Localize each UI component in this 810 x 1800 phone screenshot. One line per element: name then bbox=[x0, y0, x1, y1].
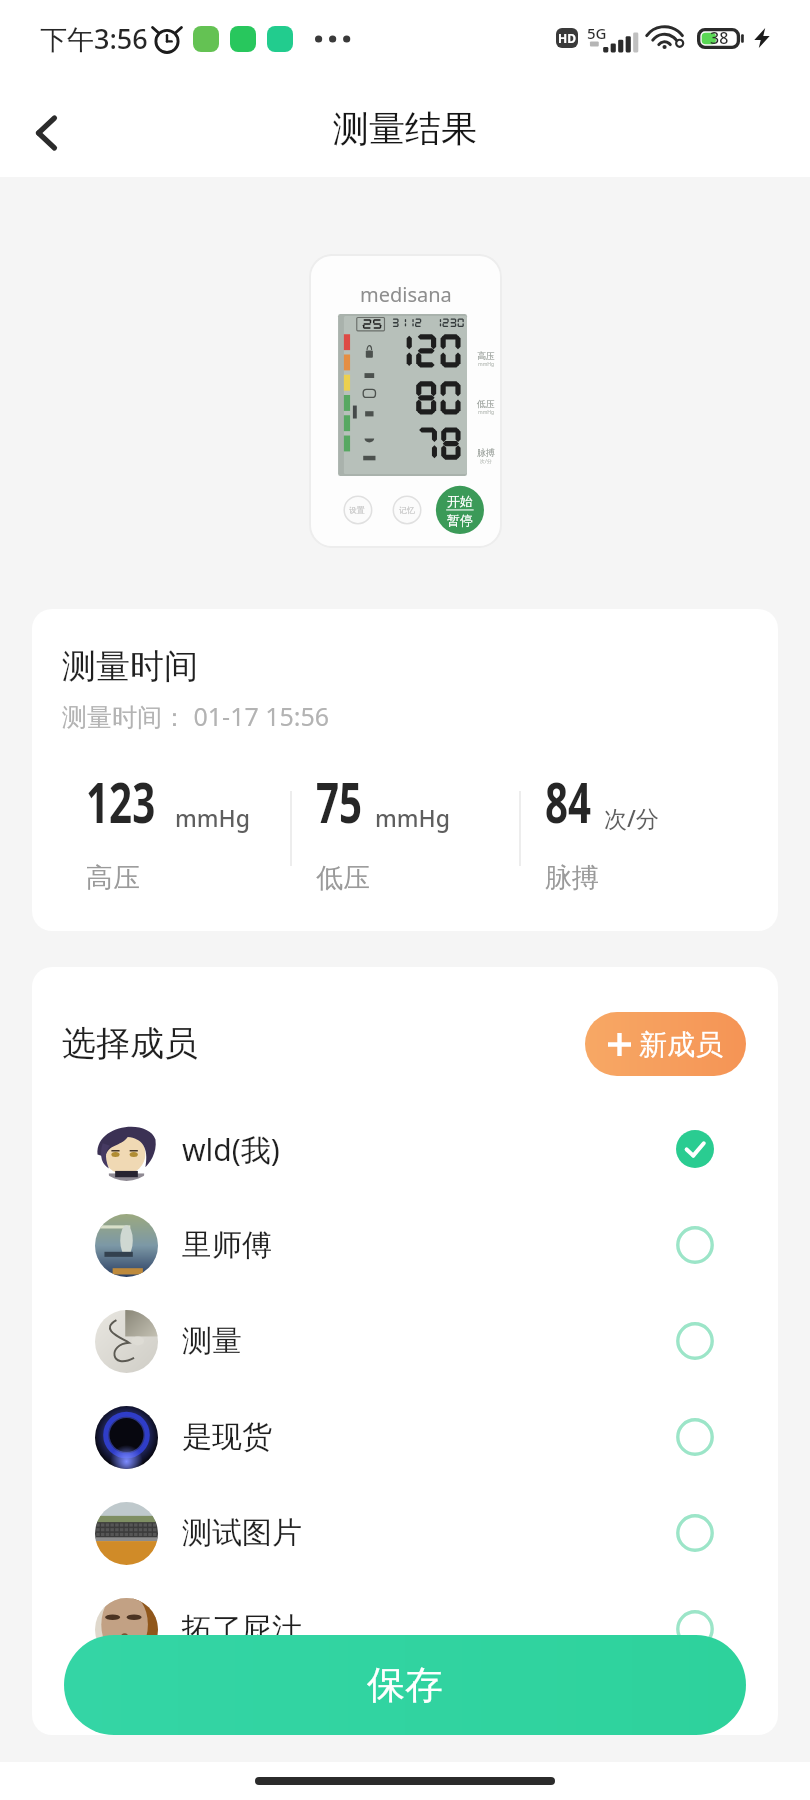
button[interactable]: 是现货 bbox=[32, 1389, 778, 1485]
staticText: 里师傅 bbox=[182, 1226, 272, 1264]
staticText: 次/分 bbox=[604, 802, 659, 833]
staticText: 低压 bbox=[477, 398, 495, 409]
staticText: HD bbox=[558, 30, 576, 46]
staticText: mmHg bbox=[478, 409, 495, 416]
button[interactable]: 里师傅 bbox=[32, 1197, 778, 1293]
staticText: 是现货 bbox=[182, 1418, 272, 1456]
staticText: 设置 bbox=[349, 505, 365, 515]
staticText: 38 bbox=[710, 27, 729, 48]
staticText: 保存 bbox=[367, 1661, 443, 1709]
button[interactable]: 保存 bbox=[64, 1635, 746, 1735]
button[interactable]: wld(我) bbox=[32, 1101, 778, 1197]
staticText: mmHg bbox=[175, 802, 251, 833]
button[interactable]: 测量 bbox=[32, 1293, 778, 1389]
staticText: 测试图片 bbox=[182, 1514, 302, 1552]
button[interactable]: 拓了屁汁 bbox=[32, 1581, 778, 1677]
staticText: 低压 bbox=[316, 861, 370, 895]
staticText: 次/分 bbox=[480, 458, 492, 465]
staticText: medisana bbox=[360, 281, 452, 308]
staticText: mmHg bbox=[478, 361, 495, 368]
staticText: 选择成员 bbox=[62, 1022, 198, 1065]
staticText: 开始 bbox=[447, 493, 473, 509]
staticText: 脉搏 bbox=[545, 861, 599, 895]
staticText: 拓了屁汁 bbox=[182, 1610, 302, 1648]
staticText: mmHg bbox=[375, 802, 451, 833]
staticText: 新成员 bbox=[639, 1027, 723, 1062]
staticText: 测量时间 bbox=[62, 645, 198, 688]
staticText: 高压 bbox=[86, 861, 140, 895]
staticText: 123 bbox=[86, 763, 156, 839]
staticText: 测量时间： 01-17 15:56 bbox=[62, 699, 330, 733]
button[interactable]: Back bbox=[0, 88, 92, 177]
staticText: wld(我) bbox=[182, 1129, 280, 1170]
staticText: 测量 bbox=[182, 1322, 242, 1360]
button[interactable]: 测试图片 bbox=[32, 1485, 778, 1581]
staticText: 测量结果 bbox=[333, 106, 477, 151]
staticText: 脉搏 bbox=[477, 447, 495, 458]
button[interactable]: 新成员 bbox=[585, 1012, 746, 1076]
staticText: 84 bbox=[545, 763, 592, 839]
staticText: 记忆 bbox=[399, 505, 415, 515]
staticText: 75 bbox=[316, 763, 363, 839]
staticText: 5G bbox=[587, 23, 607, 43]
staticText: 下午3:56 bbox=[40, 20, 148, 57]
staticText: 高压 bbox=[477, 350, 495, 361]
staticText: 暂停 bbox=[447, 512, 473, 528]
